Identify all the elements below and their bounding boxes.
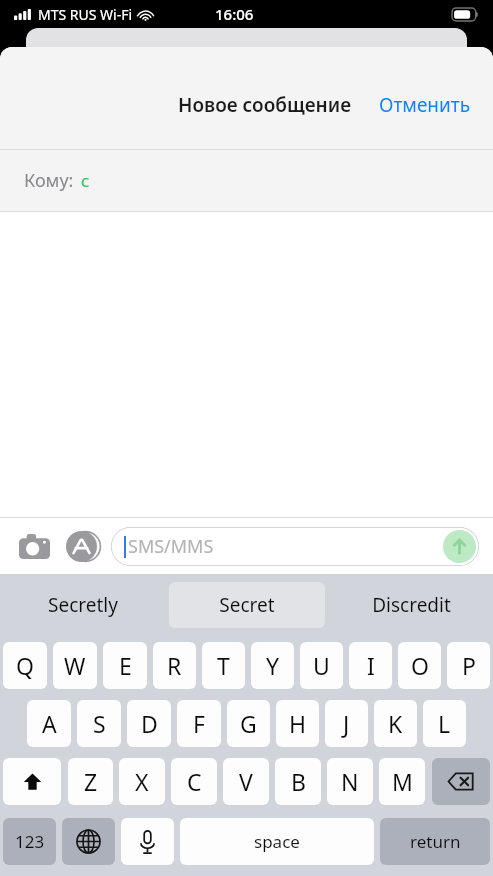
button[interactable]: Secretly	[4, 582, 161, 628]
staticText: space	[254, 830, 300, 853]
button[interactable]: J	[325, 700, 368, 747]
button[interactable]: O	[398, 642, 441, 689]
staticText: M	[392, 766, 413, 797]
button[interactable]: W	[53, 642, 97, 689]
button[interactable]: P	[447, 642, 490, 689]
button[interactable]: H	[276, 700, 319, 747]
button[interactable]: F	[177, 700, 221, 747]
button[interactable]: C	[171, 758, 217, 805]
button[interactable]: Отменить	[377, 86, 473, 124]
button[interactable]: Send	[443, 530, 476, 563]
staticText: S	[93, 708, 106, 739]
button[interactable]: Secret	[169, 582, 325, 628]
button[interactable]: X	[119, 758, 165, 805]
staticText: D	[141, 708, 158, 739]
staticText: Secretly	[48, 592, 118, 618]
staticText: Secret	[219, 592, 275, 618]
button[interactable]: return	[380, 818, 490, 865]
button[interactable]: Q	[3, 642, 47, 689]
button[interactable]: K	[374, 700, 417, 747]
staticText: A	[42, 708, 57, 739]
staticText: K	[388, 708, 403, 739]
staticText: B	[291, 766, 306, 797]
button[interactable]: 123	[3, 818, 56, 865]
staticText: Отменить	[379, 92, 471, 118]
staticText: 123	[15, 830, 45, 853]
staticText: I	[367, 650, 375, 681]
staticText: 16:06	[215, 4, 254, 24]
staticText: Y	[266, 650, 280, 681]
button[interactable]: Backspace	[432, 758, 490, 805]
staticText: N	[341, 766, 359, 797]
staticText: J	[343, 708, 350, 739]
button[interactable]: Dictation	[121, 818, 174, 865]
button[interactable]: Change keyboard language	[62, 818, 115, 865]
button[interactable]: Shift	[3, 758, 61, 805]
staticText: T	[217, 650, 230, 681]
staticText: Кому:	[24, 168, 74, 193]
button[interactable]: R	[153, 642, 196, 689]
staticText: O	[411, 650, 429, 681]
button[interactable]: Discredit	[333, 582, 489, 628]
button[interactable]: E	[103, 642, 147, 689]
staticText: Q	[16, 650, 34, 681]
staticText: L	[438, 708, 451, 739]
button[interactable]: I	[349, 642, 392, 689]
staticText: V	[239, 766, 253, 797]
staticText: MTS RUS Wi-Fi	[38, 5, 133, 24]
button[interactable]: A	[27, 700, 71, 747]
button[interactable]: B	[275, 758, 321, 805]
staticText: U	[313, 650, 330, 681]
staticText: Новое сообщение	[178, 92, 352, 118]
staticText: Z	[84, 766, 98, 797]
staticText: return	[410, 830, 461, 853]
button[interactable]: Z	[68, 758, 113, 805]
button[interactable]: D	[127, 700, 171, 747]
button[interactable]: Y	[251, 642, 294, 689]
staticText: H	[289, 708, 307, 739]
button[interactable]: G	[227, 700, 270, 747]
staticText: P	[462, 650, 476, 681]
button[interactable]: V	[223, 758, 269, 805]
button[interactable]: space	[180, 818, 374, 865]
button[interactable]: Camera	[14, 526, 54, 566]
staticText: E	[119, 650, 132, 681]
staticText: X	[135, 766, 149, 797]
staticText: C	[187, 766, 202, 797]
button[interactable]: N	[327, 758, 373, 805]
button[interactable]: S	[77, 700, 121, 747]
staticText: R	[167, 650, 182, 681]
staticText: G	[240, 708, 257, 739]
staticText: Discredit	[372, 592, 451, 618]
button[interactable]: SMS/MMS	[111, 527, 479, 566]
staticText: SMS/MMS	[128, 534, 214, 559]
staticText: с	[81, 169, 90, 192]
button[interactable]: M	[379, 758, 425, 805]
button[interactable]: L	[423, 700, 466, 747]
staticText: W	[64, 650, 86, 681]
staticText: F	[193, 708, 205, 739]
button[interactable]: T	[202, 642, 245, 689]
button[interactable]: Apps	[63, 526, 103, 566]
button[interactable]: Кому:	[0, 150, 493, 211]
button[interactable]: U	[300, 642, 343, 689]
